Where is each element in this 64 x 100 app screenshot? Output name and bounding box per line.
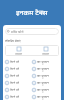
button[interactable]: रिटर्न भरें (5, 58, 31, 65)
button[interactable]: रिटर्न भरें (5, 79, 31, 86)
staticText: रिटर्न भरें (10, 60, 19, 64)
staticText: लोकप्रिय सेवाएं (5, 39, 21, 43)
staticText: कर भुगतान (37, 95, 49, 99)
button[interactable]: रिटर्न भरें (5, 93, 31, 100)
button[interactable]: आयकर (5, 45, 32, 56)
button[interactable]: कर भुगतान (32, 79, 59, 86)
staticText: रिटर्न भरें (10, 81, 19, 85)
staticText: कर भुगतान (37, 81, 49, 85)
button[interactable]: रिटर्न भरें (5, 72, 31, 79)
button[interactable]: सर्विस खोजें (5, 28, 59, 35)
staticText: आयकर (42, 52, 49, 55)
button[interactable]: रिटर्न भरें (5, 65, 31, 72)
staticText: सर्विस खोजें (11, 30, 24, 34)
staticText: रिटर्न भरें (10, 95, 19, 99)
staticText: कर भुगतान (37, 74, 49, 78)
button[interactable]: आयकर (32, 45, 59, 56)
button[interactable]: कर भुगतान (32, 86, 59, 93)
button[interactable]: कर भुगतान (32, 58, 59, 65)
button[interactable]: कर भुगतान (32, 72, 59, 79)
button[interactable]: रिटर्न भरें (5, 86, 31, 93)
button[interactable]: कर भुगतान (32, 65, 59, 72)
staticText: रिटर्न भरें (10, 88, 19, 92)
staticText: आयकर (15, 52, 22, 55)
staticText: कर भुगतान (37, 67, 49, 71)
staticText: रिटर्न भरें (10, 67, 19, 71)
button[interactable]: कर भुगतान (32, 93, 59, 100)
staticText: कर भुगतान (37, 88, 49, 92)
staticText: कर भुगतान (37, 60, 49, 64)
staticText: इनकम टैक्स (16, 8, 48, 18)
staticText: रिटर्न भरें (10, 74, 19, 78)
